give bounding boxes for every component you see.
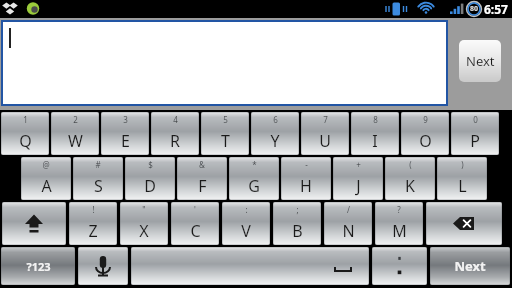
button[interactable]: 0 xyxy=(451,112,499,155)
staticText: 9 xyxy=(423,114,428,125)
staticText: ?123 xyxy=(26,259,51,274)
button[interactable]: : xyxy=(222,202,270,245)
staticText: 80 xyxy=(470,4,479,14)
staticText: H xyxy=(300,175,312,197)
staticText: B xyxy=(292,220,303,242)
button[interactable]: 6 xyxy=(251,112,299,155)
button[interactable]: Period xyxy=(372,247,427,285)
staticText: 1 xyxy=(23,114,28,125)
staticText: @ xyxy=(42,159,50,170)
staticText: V xyxy=(241,220,251,242)
staticText: I xyxy=(372,130,378,152)
staticText: F xyxy=(198,175,207,197)
staticText: ? xyxy=(397,204,401,215)
staticText: E xyxy=(121,130,130,152)
button[interactable]: 7 xyxy=(301,112,349,155)
staticText: & xyxy=(199,159,205,170)
button[interactable]: ) xyxy=(437,157,487,200)
staticText: ) xyxy=(461,159,464,170)
button[interactable]: Space xyxy=(131,247,369,285)
staticText: T xyxy=(221,130,230,152)
staticText: U xyxy=(319,130,331,152)
button[interactable]: Shift xyxy=(2,202,66,245)
staticText: N xyxy=(342,220,355,242)
staticText: A xyxy=(41,175,52,197)
button[interactable]: ?123 xyxy=(1,247,75,285)
button[interactable]: @ xyxy=(21,157,71,200)
staticText: 6:57 xyxy=(484,1,508,17)
staticText: ' xyxy=(194,204,196,215)
staticText: ( xyxy=(409,159,412,170)
staticText: - xyxy=(305,159,308,170)
staticText: 8 xyxy=(373,114,378,125)
button[interactable]: Voice input xyxy=(78,247,128,285)
button[interactable]: 5 xyxy=(201,112,249,155)
staticText: P xyxy=(470,130,480,152)
button[interactable]: Next xyxy=(430,247,510,285)
staticText: Next xyxy=(454,257,486,275)
button[interactable]: " xyxy=(120,202,168,245)
staticText: 3 xyxy=(123,114,128,125)
staticText: 7 xyxy=(323,114,328,125)
staticText: R xyxy=(170,130,180,152)
button[interactable]: Backspace xyxy=(426,202,502,245)
staticText: J xyxy=(356,175,361,197)
button[interactable]: 1 xyxy=(1,112,49,155)
button[interactable]: * xyxy=(229,157,279,200)
button[interactable]: 8 xyxy=(351,112,399,155)
button[interactable]: ( xyxy=(385,157,435,200)
staticText: 6 xyxy=(273,114,278,125)
staticText: M xyxy=(392,220,407,242)
button[interactable]: / xyxy=(324,202,372,245)
staticText: # xyxy=(95,159,101,170)
staticText: D xyxy=(144,175,156,197)
staticText: Z xyxy=(88,220,98,242)
button[interactable]: # xyxy=(73,157,123,200)
button[interactable]: - xyxy=(281,157,331,200)
staticText: + xyxy=(356,159,361,170)
staticText: $ xyxy=(148,159,153,170)
button[interactable]: 3 xyxy=(101,112,149,155)
button[interactable]: & xyxy=(177,157,227,200)
staticText: 4 xyxy=(173,114,178,125)
staticText: ! xyxy=(92,204,95,215)
staticText: 5 xyxy=(223,114,228,125)
button[interactable]: ? xyxy=(375,202,423,245)
staticText: Q xyxy=(19,130,32,152)
staticText: : xyxy=(245,204,248,215)
staticText: O xyxy=(419,130,432,152)
button[interactable]: 2 xyxy=(51,112,99,155)
staticText: S xyxy=(94,175,103,197)
button[interactable]: ! xyxy=(69,202,117,245)
staticText: W xyxy=(68,130,83,152)
button[interactable]: ' xyxy=(171,202,219,245)
button[interactable]: $ xyxy=(125,157,175,200)
staticText: 2 xyxy=(73,114,78,125)
staticText: Next xyxy=(466,52,495,70)
staticText: K xyxy=(405,175,415,197)
button[interactable]: ; xyxy=(273,202,321,245)
button[interactable]: 4 xyxy=(151,112,199,155)
staticText: L xyxy=(458,175,467,197)
button[interactable]: Next xyxy=(459,40,501,82)
staticText: X xyxy=(139,220,149,242)
staticText: G xyxy=(248,175,260,197)
staticText: " xyxy=(142,204,146,215)
button[interactable] xyxy=(3,22,446,104)
staticText: Y xyxy=(270,130,280,152)
staticText: 0 xyxy=(473,114,478,125)
button[interactable]: 9 xyxy=(401,112,449,155)
staticText: ; xyxy=(296,204,299,215)
staticText: * xyxy=(252,159,257,170)
button[interactable]: + xyxy=(333,157,383,200)
staticText: C xyxy=(190,220,201,242)
staticText: / xyxy=(347,204,350,215)
